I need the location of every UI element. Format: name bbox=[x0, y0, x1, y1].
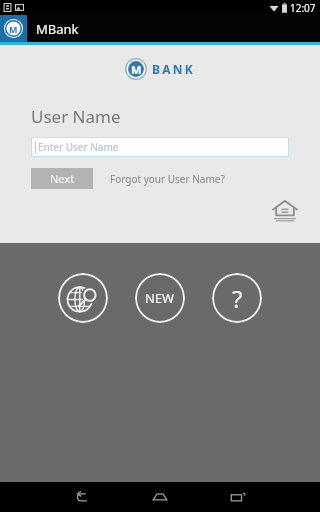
staticText: NEW bbox=[145, 289, 175, 307]
staticText: Enter User Name bbox=[38, 140, 119, 154]
button[interactable]: Next bbox=[31, 168, 93, 189]
staticText: Next bbox=[50, 171, 75, 186]
button[interactable]: Forgot your User Name? bbox=[110, 172, 225, 186]
staticText: Forgot your User Name? bbox=[110, 172, 225, 186]
staticText: M bbox=[131, 62, 142, 77]
button[interactable]: Recent apps bbox=[218, 482, 258, 512]
button[interactable]: Back bbox=[62, 482, 102, 512]
button[interactable]: Enter User Name bbox=[31, 137, 289, 157]
staticText: MBank bbox=[36, 20, 79, 38]
staticText: User Name bbox=[31, 105, 121, 128]
staticText: M bbox=[9, 23, 18, 35]
button[interactable]: Help bbox=[212, 273, 262, 323]
staticText: BANK bbox=[152, 61, 195, 77]
button[interactable]: Find a location bbox=[58, 273, 108, 323]
button[interactable]: Home bbox=[140, 482, 180, 512]
button[interactable]: New user bbox=[135, 273, 185, 323]
staticText: 12:07 bbox=[290, 1, 316, 15]
staticText: ? bbox=[232, 282, 243, 315]
